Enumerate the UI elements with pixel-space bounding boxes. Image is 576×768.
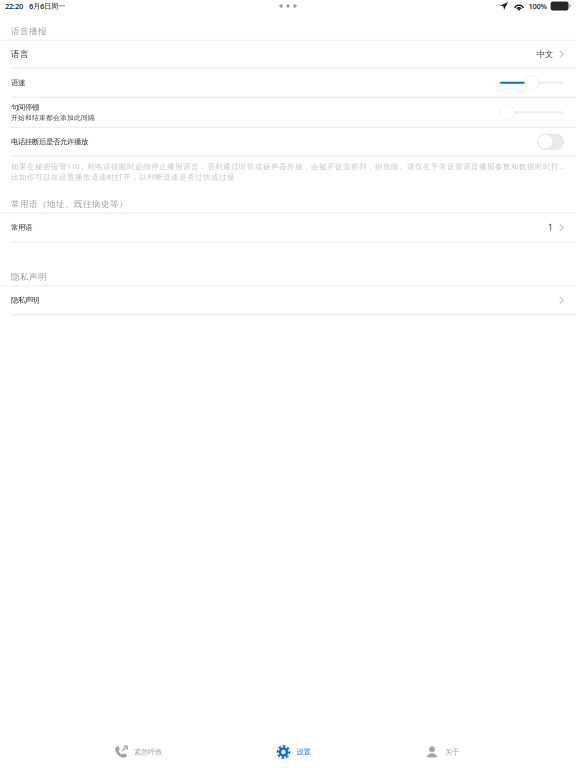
button[interactable]: Toggle playback after hangup — [537, 133, 564, 150]
button[interactable]: 语言 — [0, 41, 576, 69]
button[interactable]: Slider — [500, 105, 514, 119]
button[interactable]: 隐私声明 — [0, 286, 576, 315]
staticText: 6月6日周一 — [29, 1, 65, 11]
staticText: 句间停顿 — [11, 103, 39, 112]
button[interactable]: Slider — [500, 75, 539, 90]
button[interactable]: 设置 — [276, 741, 311, 763]
staticText: 常用语 — [11, 223, 32, 232]
staticText: 中文 — [537, 49, 553, 59]
staticText: 电话挂断后是否允许播放 — [11, 137, 88, 146]
staticText: 隐私声明 — [11, 296, 39, 305]
staticText: 如果在秘密报警110，则电话挂断时必须停止播报语音，否则通过听筒或扬声器外放，会… — [11, 161, 566, 171]
staticText: 22:20 — [5, 1, 23, 11]
staticText: 语言 — [11, 49, 29, 60]
staticText: 常用语（地址、既往病史等） — [11, 199, 128, 210]
staticText: 设置 — [296, 747, 310, 757]
staticText: 比如你可以在设置播放语速时打开，以判断语速是否过快或过慢 — [11, 172, 235, 182]
staticText: 开始和结束都会添加此间隔 — [11, 113, 95, 122]
staticText: 语音播报 — [11, 26, 47, 37]
staticText: 隐私声明 — [11, 271, 47, 282]
staticText: 关于 — [445, 747, 459, 757]
staticText: 1 — [548, 222, 553, 233]
staticText: 100% — [528, 1, 547, 11]
staticText: 语速 — [11, 78, 25, 87]
button[interactable]: 关于 — [425, 741, 459, 763]
staticText: 紧急呼救 — [134, 747, 162, 757]
button[interactable]: 常用语 — [0, 213, 576, 242]
button[interactable]: 紧急呼救 — [114, 741, 162, 763]
